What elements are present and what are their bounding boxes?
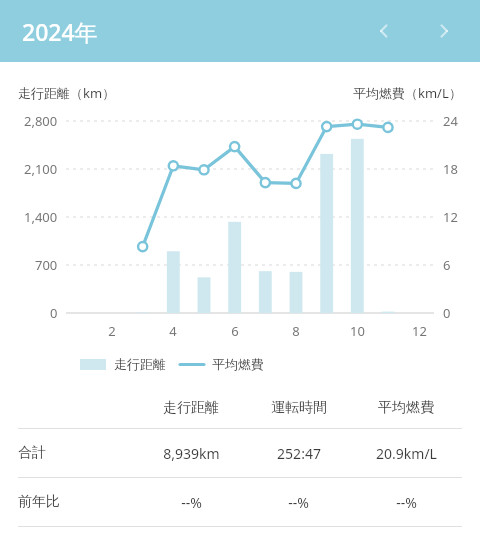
staticText: --% bbox=[288, 493, 309, 512]
staticText: 18 bbox=[443, 160, 458, 178]
button[interactable]: Previous year bbox=[362, 9, 406, 53]
staticText: 0 bbox=[50, 304, 58, 322]
staticText: 2,800 bbox=[24, 112, 58, 130]
staticText: 走行距離（km） bbox=[18, 84, 116, 102]
staticText: 6 bbox=[231, 322, 239, 340]
staticText: --% bbox=[181, 493, 202, 512]
staticText: 2 bbox=[108, 322, 116, 340]
staticText: 平均燃費 bbox=[378, 399, 434, 417]
staticText: 8 bbox=[292, 322, 300, 340]
staticText: 走行距離 bbox=[163, 399, 219, 417]
staticText: 252:47 bbox=[277, 444, 321, 463]
staticText: 10 bbox=[350, 322, 365, 340]
staticText: 2024年 bbox=[22, 16, 98, 47]
staticText: --% bbox=[396, 493, 417, 512]
button[interactable]: Next year bbox=[422, 9, 466, 53]
staticText: 2,100 bbox=[24, 160, 58, 178]
staticText: 0 bbox=[443, 304, 451, 322]
staticText: 12 bbox=[412, 322, 427, 340]
button[interactable]: 前年比 bbox=[0, 478, 480, 526]
staticText: 1,400 bbox=[24, 208, 58, 226]
staticText: 20.9km/L bbox=[376, 444, 437, 463]
staticText: 走行距離 bbox=[114, 356, 166, 372]
staticText: 12 bbox=[443, 208, 458, 226]
staticText: 合計 bbox=[18, 444, 46, 462]
button[interactable]: 合計 bbox=[0, 429, 480, 477]
staticText: 平均燃費 bbox=[212, 356, 264, 372]
staticText: 700 bbox=[35, 256, 58, 274]
staticText: 平均燃費（km/L） bbox=[353, 84, 462, 102]
staticText: 運転時間 bbox=[271, 399, 327, 417]
staticText: 前年比 bbox=[18, 493, 60, 511]
staticText: 6 bbox=[443, 256, 451, 274]
staticText: 4 bbox=[169, 322, 177, 340]
staticText: 8,939km bbox=[163, 444, 220, 463]
staticText: 24 bbox=[443, 112, 458, 130]
